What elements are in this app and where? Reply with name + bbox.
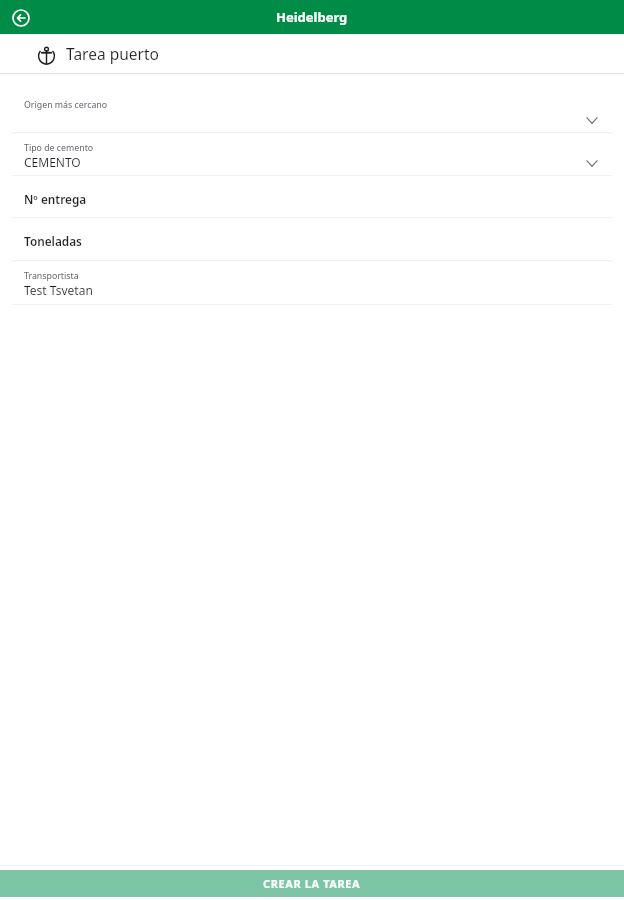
staticText: Transportista <box>24 270 79 282</box>
button[interactable]: Nº entrega <box>0 176 624 218</box>
staticText: Origen más cercano <box>24 99 108 111</box>
staticText: CREAR LA TAREA <box>263 876 361 891</box>
button[interactable]: Transportista <box>0 261 624 305</box>
staticText: Toneladas <box>24 233 82 249</box>
staticText: CEMENTO <box>24 154 81 170</box>
staticText: Test Tsvetan <box>24 282 93 298</box>
button[interactable]: CREAR LA TAREA <box>0 870 624 897</box>
staticText: Heidelberg <box>276 8 348 26</box>
staticText: Nº entrega <box>24 191 87 207</box>
staticText: Tipo de cemento <box>24 142 94 154</box>
button[interactable]: Tipo de cemento <box>0 133 624 176</box>
button[interactable]: Origen más cercano <box>0 90 624 133</box>
button[interactable]: Back <box>9 6 33 30</box>
staticText: Tarea puerto <box>66 43 159 64</box>
button[interactable]: Toneladas <box>0 218 624 261</box>
